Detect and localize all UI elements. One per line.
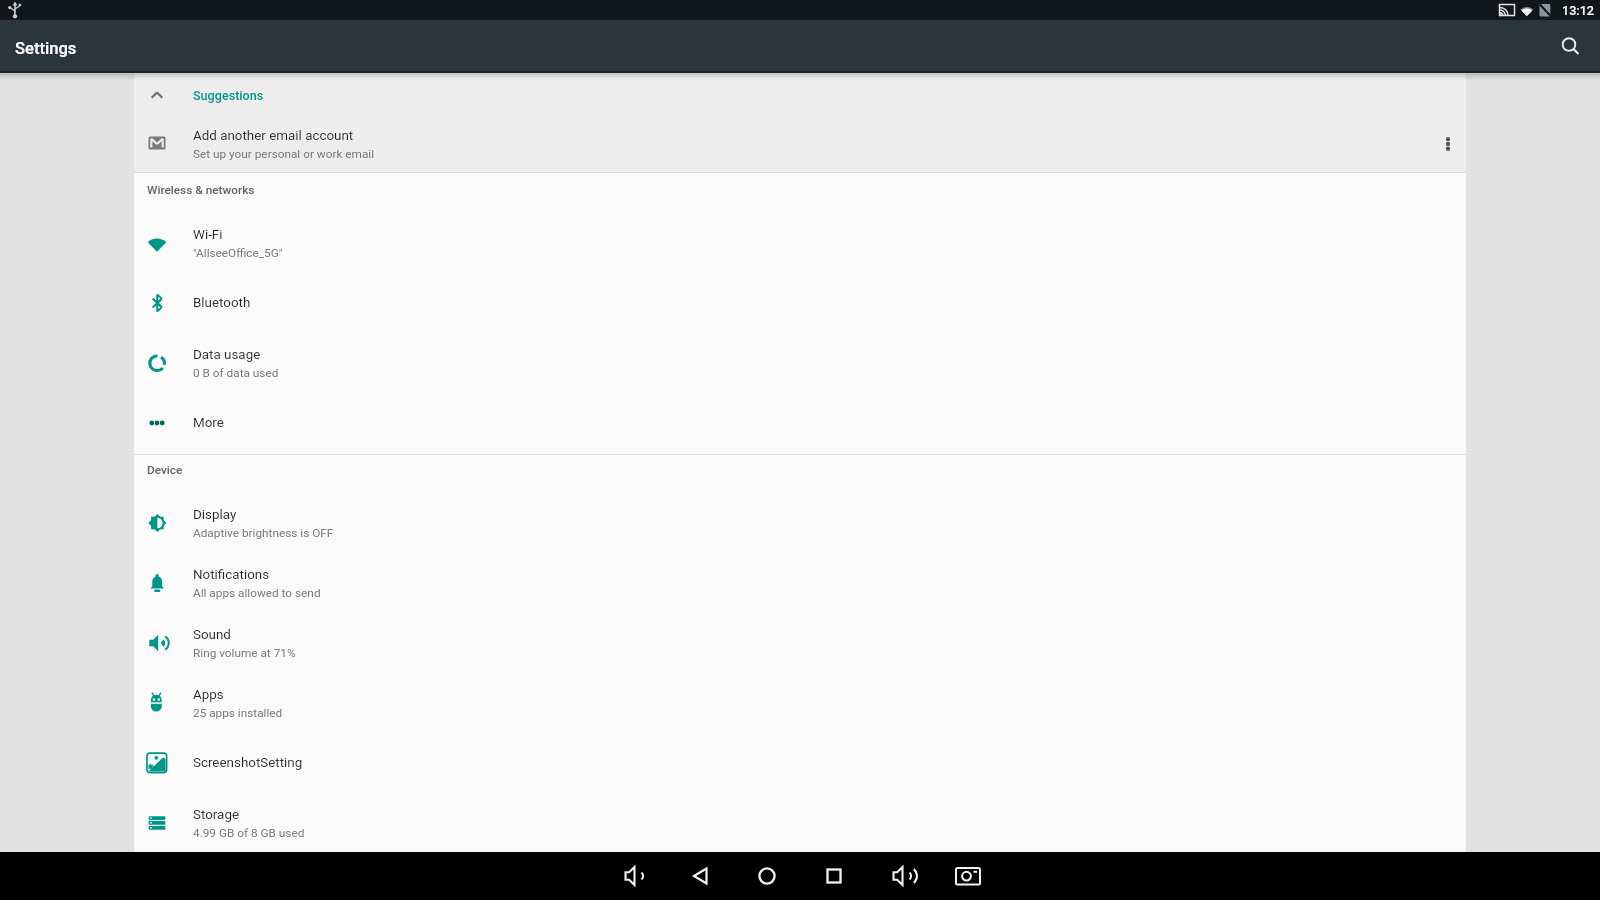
staticText: Wi-Fi xyxy=(193,227,223,243)
button[interactable] xyxy=(948,856,988,896)
staticText: Apps xyxy=(193,687,224,703)
staticText: Add another email account xyxy=(193,128,354,144)
button[interactable]: Wi-Fi xyxy=(134,213,1466,273)
staticText: Ring volume at 71% xyxy=(193,646,296,660)
button[interactable]: More xyxy=(134,393,1466,453)
button[interactable]: ScreenshotSetting xyxy=(134,733,1466,793)
button[interactable] xyxy=(680,856,720,896)
staticText: More xyxy=(193,415,224,431)
staticText: 25 apps installed xyxy=(193,706,283,720)
button[interactable]: Storage xyxy=(134,793,1466,853)
button[interactable]: Suggestions xyxy=(134,73,1466,117)
staticText: Adaptive brightness is OFF xyxy=(193,526,334,540)
staticText: 13:12 xyxy=(1562,3,1594,18)
button[interactable]: Notifications xyxy=(134,553,1466,613)
staticText: 4.99 GB of 8 GB used xyxy=(193,826,305,840)
staticText: Set up your personal or work email xyxy=(193,147,375,161)
staticText: Notifications xyxy=(193,567,270,583)
button[interactable]: Data usage xyxy=(134,333,1466,393)
staticText: 0 B of data used xyxy=(193,366,279,380)
button[interactable] xyxy=(1428,125,1468,165)
button[interactable] xyxy=(881,856,921,896)
button[interactable]: Bluetooth xyxy=(134,273,1466,333)
button[interactable] xyxy=(814,856,854,896)
staticText: Display xyxy=(193,507,237,523)
staticText: Suggestions xyxy=(193,88,264,103)
staticText: Settings xyxy=(15,39,77,58)
button[interactable] xyxy=(1551,27,1591,67)
staticText: Sound xyxy=(193,627,231,643)
staticText: All apps allowed to send xyxy=(193,586,321,600)
button[interactable]: Add another email account xyxy=(134,117,1466,172)
button[interactable]: Sound xyxy=(134,613,1466,673)
staticText: "AllseeOffice_5G" xyxy=(193,246,283,260)
button[interactable] xyxy=(613,856,653,896)
staticText: Wireless & networks xyxy=(147,183,255,197)
button[interactable]: Apps xyxy=(134,673,1466,733)
staticText: Bluetooth xyxy=(193,295,251,311)
button[interactable]: Display xyxy=(134,493,1466,553)
staticText: Storage xyxy=(193,807,240,823)
button[interactable] xyxy=(747,856,787,896)
staticText: Data usage xyxy=(193,347,261,363)
staticText: ScreenshotSetting xyxy=(193,755,303,771)
staticText: Device xyxy=(147,463,183,477)
